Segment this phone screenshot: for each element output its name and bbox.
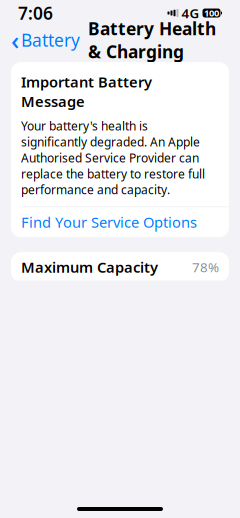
staticText: Battery Health & Charging [88,17,216,63]
staticText: 78% [192,258,219,276]
staticText: ‹ [11,23,19,57]
staticText: 7:06 [18,1,53,24]
staticText: 4G [181,4,199,22]
button[interactable]: Find Your Service Options [11,207,229,237]
staticText: Find Your Service Options [21,212,197,232]
staticText: Your battery's health is significantly d… [21,118,205,198]
staticText: 100 [204,7,219,19]
button[interactable]: ‹ [11,19,80,61]
staticText: Important Battery Message [21,72,152,111]
staticText: Battery [21,28,80,51]
staticText: Maximum Capacity [21,257,158,277]
